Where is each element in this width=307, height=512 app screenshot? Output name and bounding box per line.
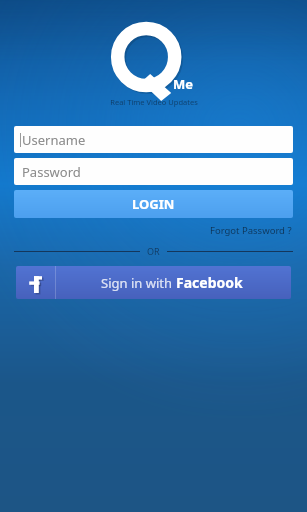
staticText: Real Time Video Updates [110, 97, 198, 107]
staticText: Password [22, 163, 81, 181]
staticText: Forgot Password ? [210, 224, 292, 237]
button[interactable]: Forgot Password ? [209, 222, 293, 239]
staticText: Facebook [176, 273, 243, 292]
button[interactable]: Username [14, 126, 293, 153]
button[interactable]: Facebook [16, 266, 291, 299]
button[interactable]: Password [14, 158, 293, 185]
staticText: LOGIN [132, 195, 175, 213]
other: Facebook [26, 273, 46, 293]
staticText: Me [173, 75, 194, 93]
staticText: Sign in with [101, 274, 176, 292]
button[interactable]: LOGIN [14, 190, 293, 218]
staticText: OR [147, 245, 160, 257]
staticText: Username [22, 131, 86, 149]
